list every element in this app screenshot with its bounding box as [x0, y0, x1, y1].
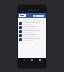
- button[interactable]: App logo: [18, 13, 46, 18]
- button[interactable]: More options: [18, 33, 46, 37]
- button[interactable]: Recent apps: [38, 58, 42, 62]
- button[interactable]: More options: [18, 25, 46, 29]
- button[interactable]: Back: [22, 58, 26, 62]
- button[interactable]: More options: [18, 21, 46, 25]
- button[interactable]: More options: [18, 37, 46, 41]
- button[interactable]: [18, 18, 46, 21]
- button[interactable]: More options: [18, 29, 46, 33]
- button[interactable]: Search: [33, 15, 44, 17]
- button[interactable]: Home: [30, 58, 34, 62]
- button[interactable]: App logo: [19, 14, 26, 17]
